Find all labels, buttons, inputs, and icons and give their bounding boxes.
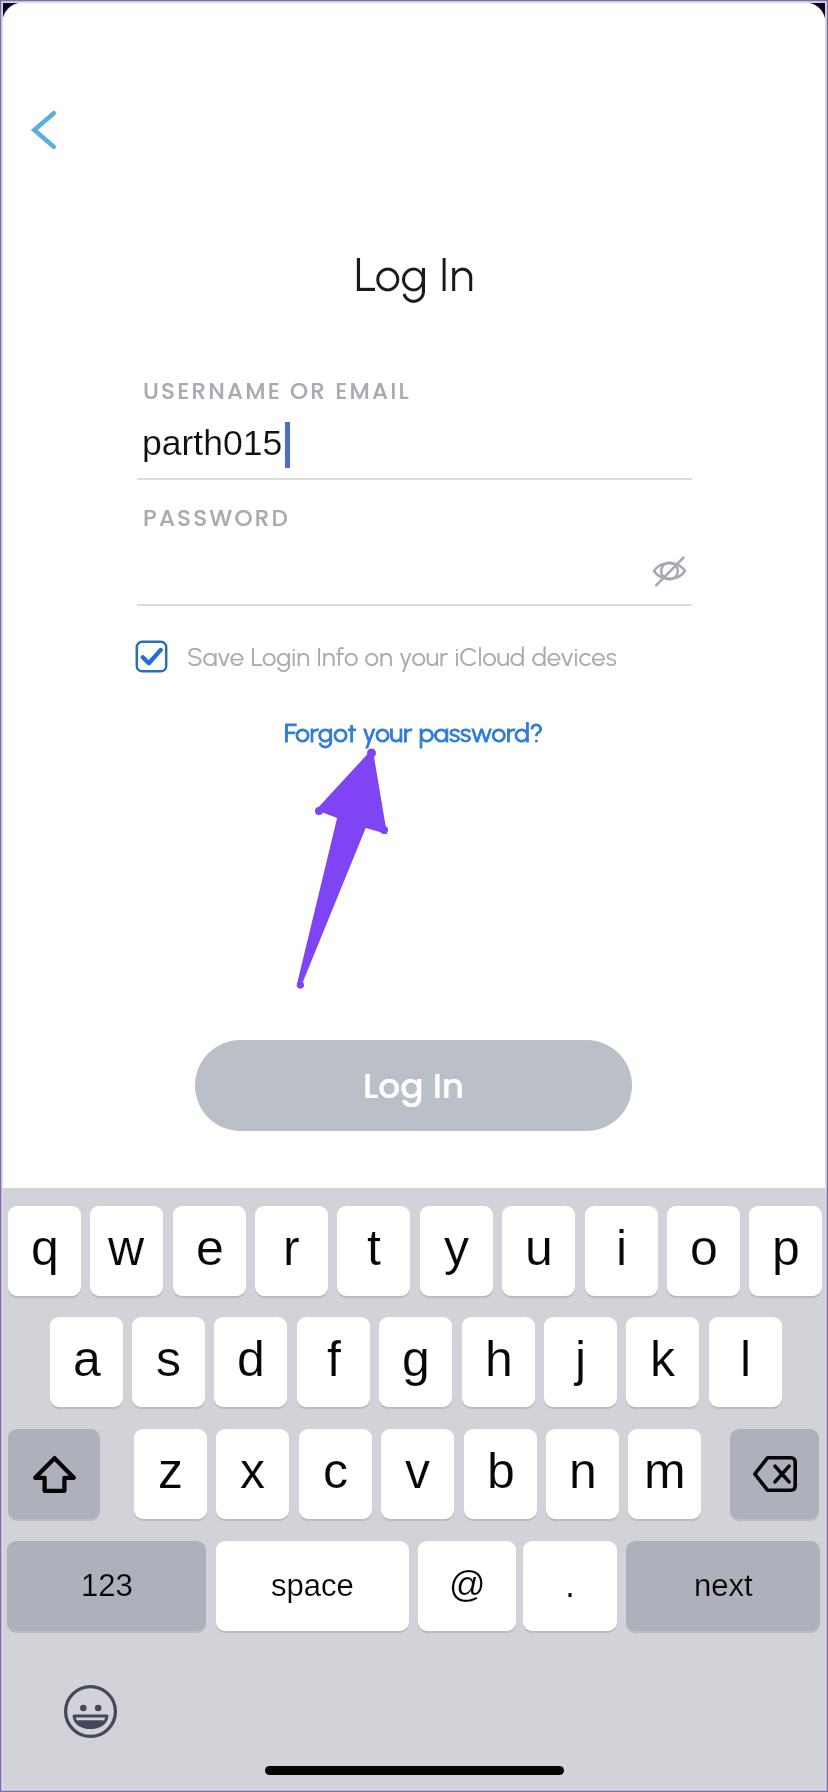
button[interactable]: .: [523, 1541, 617, 1631]
button[interactable]: Save Login Info on your iCloud devices: [135, 633, 617, 679]
button[interactable]: @: [418, 1541, 516, 1631]
staticText: o: [690, 1220, 718, 1276]
staticText: l: [740, 1331, 752, 1387]
staticText: Save Login Info on your iCloud devices: [187, 641, 617, 672]
button[interactable]: e: [173, 1206, 246, 1296]
button[interactable]: Shift: [8, 1429, 100, 1519]
staticText: w: [108, 1220, 145, 1276]
button[interactable]: y: [420, 1206, 493, 1296]
staticText: u: [525, 1220, 553, 1276]
staticText: PASSWORD: [143, 502, 290, 534]
button[interactable]: g: [379, 1317, 452, 1407]
button[interactable]: w: [90, 1206, 163, 1296]
button[interactable]: Show password: [639, 541, 700, 600]
button[interactable]: o: [667, 1206, 740, 1296]
staticText: Log In: [363, 1062, 465, 1110]
staticText: x: [240, 1443, 265, 1499]
button[interactable]: i: [585, 1206, 658, 1296]
staticText: e: [196, 1220, 224, 1276]
button[interactable]: d: [214, 1317, 287, 1407]
button[interactable]: Emoji keyboard: [63, 1684, 118, 1739]
button[interactable]: Back: [10, 100, 77, 160]
staticText: a: [73, 1331, 101, 1387]
staticText: m: [644, 1443, 686, 1499]
staticText: n: [569, 1443, 597, 1499]
button[interactable]: z: [134, 1429, 207, 1519]
button[interactable]: f: [297, 1317, 370, 1407]
button[interactable]: l: [709, 1317, 782, 1407]
staticText: b: [487, 1443, 515, 1499]
button[interactable]: k: [626, 1317, 699, 1407]
staticText: q: [31, 1220, 59, 1276]
staticText: 123: [81, 1568, 133, 1603]
button[interactable]: t: [337, 1206, 410, 1296]
staticText: j: [575, 1331, 587, 1387]
staticText: c: [323, 1443, 348, 1499]
button[interactable]: j: [544, 1317, 617, 1407]
staticText: h: [485, 1331, 513, 1387]
staticText: k: [650, 1331, 675, 1387]
button[interactable]: m: [628, 1429, 701, 1519]
button[interactable]: h: [462, 1317, 535, 1407]
button[interactable]: q: [8, 1206, 81, 1296]
button[interactable]: c: [299, 1429, 372, 1519]
button[interactable]: a: [50, 1317, 123, 1407]
staticText: i: [616, 1220, 628, 1276]
button[interactable]: Forgot your password?: [284, 717, 544, 748]
staticText: d: [237, 1331, 265, 1387]
staticText: next: [694, 1568, 753, 1603]
button[interactable]: n: [546, 1429, 619, 1519]
staticText: g: [402, 1331, 430, 1387]
staticText: Forgot your password?: [284, 717, 544, 748]
staticText: p: [772, 1220, 800, 1276]
button[interactable]: u: [502, 1206, 575, 1296]
staticText: z: [158, 1443, 183, 1499]
button[interactable]: s: [132, 1317, 205, 1407]
staticText: parth015: [142, 423, 283, 463]
button[interactable]: next: [626, 1541, 820, 1631]
staticText: f: [327, 1331, 341, 1387]
staticText: space: [271, 1568, 354, 1603]
staticText: Log In: [0, 247, 828, 303]
staticText: @: [449, 1564, 486, 1604]
staticText: r: [283, 1220, 300, 1276]
staticText: v: [405, 1443, 430, 1499]
staticText: USERNAME OR EMAIL: [143, 375, 411, 407]
button[interactable]: space: [216, 1541, 409, 1631]
staticText: s: [156, 1331, 181, 1387]
staticText: .: [565, 1564, 576, 1604]
button[interactable]: r: [255, 1206, 328, 1296]
button[interactable]: Log In: [195, 1040, 632, 1131]
button[interactable]: Backspace: [730, 1429, 819, 1519]
button[interactable]: x: [216, 1429, 289, 1519]
button[interactable]: p: [749, 1206, 822, 1296]
button[interactable]: v: [381, 1429, 454, 1519]
button[interactable]: b: [464, 1429, 537, 1519]
staticText: t: [367, 1220, 381, 1276]
staticText: y: [444, 1220, 469, 1276]
staticText: Forgot your password?: [284, 717, 544, 748]
button[interactable]: 123: [7, 1541, 206, 1631]
